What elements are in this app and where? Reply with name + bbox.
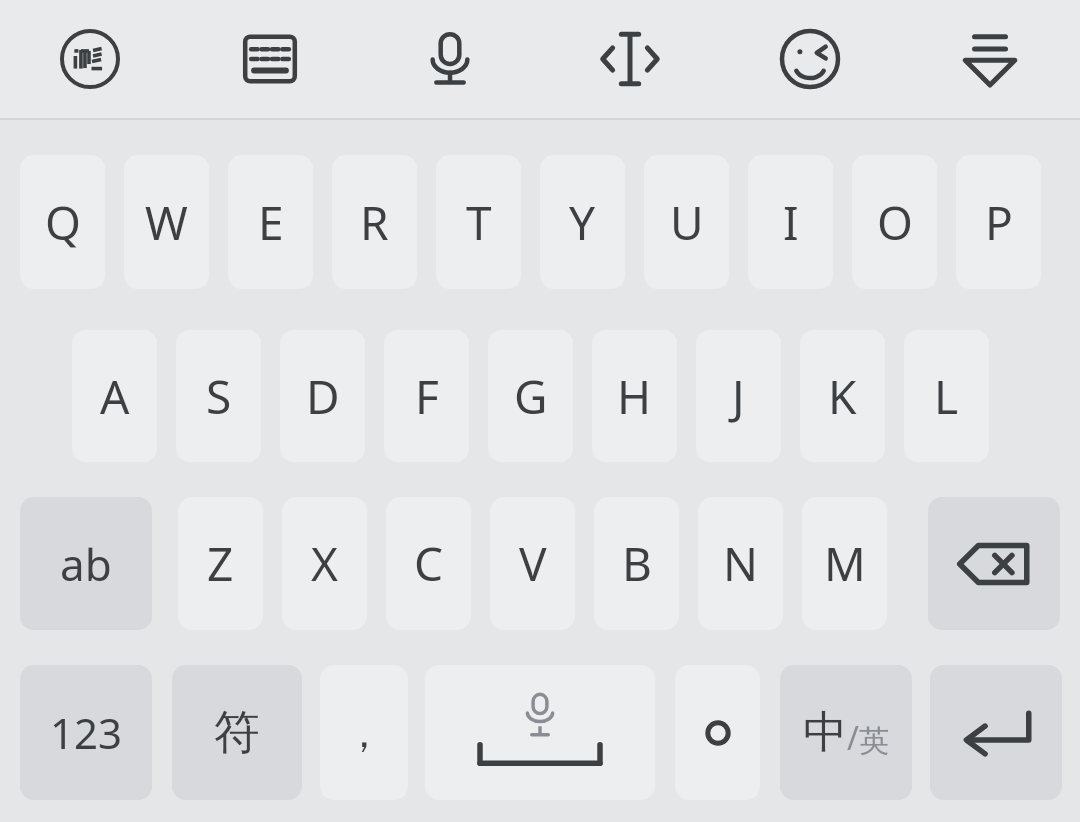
button[interactable]: Period xyxy=(675,665,760,800)
button[interactable]: Q xyxy=(20,155,105,289)
button[interactable]: Enter xyxy=(930,665,1062,800)
button[interactable]: X xyxy=(282,497,367,630)
button[interactable]: Switch to lowercase xyxy=(20,497,152,630)
staticText: ab xyxy=(60,534,112,594)
staticText: F xyxy=(415,365,439,428)
staticText: G xyxy=(514,365,548,428)
staticText: T xyxy=(466,191,492,254)
staticText: O xyxy=(877,191,913,254)
staticText: K xyxy=(828,365,857,428)
button[interactable]: C xyxy=(386,497,471,630)
staticText: ， xyxy=(344,708,384,758)
staticText: P xyxy=(985,191,1013,254)
staticText: 123 xyxy=(50,704,123,761)
staticText: S xyxy=(206,365,232,428)
button[interactable]: Y xyxy=(540,155,625,289)
button[interactable]: M xyxy=(802,497,887,630)
button[interactable]: V xyxy=(490,497,575,630)
button[interactable]: E xyxy=(228,155,313,289)
staticText: J xyxy=(732,365,745,428)
button[interactable]: Move cursor xyxy=(585,14,675,104)
staticText: R xyxy=(360,191,389,254)
button[interactable]: Backspace xyxy=(928,497,1060,630)
staticText: V xyxy=(519,532,547,595)
staticText: C xyxy=(414,532,444,595)
button[interactable]: J xyxy=(696,330,781,462)
staticText: / xyxy=(847,716,859,760)
button[interactable]: F xyxy=(384,330,469,462)
staticText: A xyxy=(100,365,130,428)
button[interactable]: D xyxy=(280,330,365,462)
button[interactable]: A xyxy=(72,330,157,462)
staticText: Q xyxy=(45,191,81,254)
button[interactable]: Emoji xyxy=(765,14,855,104)
button[interactable]: O xyxy=(852,155,937,289)
staticText: H xyxy=(617,365,652,428)
button[interactable]: P xyxy=(956,155,1041,289)
staticText: W xyxy=(145,191,188,254)
button[interactable]: U xyxy=(644,155,729,289)
staticText: D xyxy=(306,365,340,428)
button[interactable]: Z xyxy=(178,497,263,630)
button[interactable]: B xyxy=(594,497,679,630)
button[interactable]: I xyxy=(748,155,833,289)
button[interactable]: iFlytek input method xyxy=(45,14,135,104)
staticText: N xyxy=(723,532,758,595)
button[interactable]: S xyxy=(176,330,261,462)
staticText: I xyxy=(783,191,799,254)
button[interactable]: 123 numbers xyxy=(20,665,152,800)
button[interactable]: T xyxy=(436,155,521,289)
staticText: X xyxy=(311,532,338,595)
button[interactable]: Symbols xyxy=(172,665,302,800)
button[interactable]: Chinese English toggle xyxy=(780,665,912,800)
button[interactable]: W xyxy=(124,155,209,289)
staticText: E xyxy=(258,191,284,254)
button[interactable]: Hide keyboard xyxy=(945,14,1035,104)
staticText: U xyxy=(670,191,704,254)
staticText: Z xyxy=(207,532,234,595)
button[interactable]: Space xyxy=(425,665,655,800)
button[interactable]: K xyxy=(800,330,885,462)
button[interactable]: Keyboard layout xyxy=(225,14,315,104)
button[interactable]: Voice input xyxy=(405,14,495,104)
button[interactable]: H xyxy=(592,330,677,462)
staticText: B xyxy=(622,532,652,595)
button[interactable]: L xyxy=(904,330,989,462)
staticText: M xyxy=(824,532,866,595)
staticText: 符 xyxy=(214,704,260,762)
button[interactable]: R xyxy=(332,155,417,289)
button[interactable]: Comma xyxy=(320,665,408,800)
button[interactable]: G xyxy=(488,330,573,462)
staticText: 中 xyxy=(803,705,847,760)
staticText: L xyxy=(934,365,959,428)
button[interactable]: N xyxy=(698,497,783,630)
staticText: 英 xyxy=(859,722,889,760)
staticText: Y xyxy=(569,191,596,254)
